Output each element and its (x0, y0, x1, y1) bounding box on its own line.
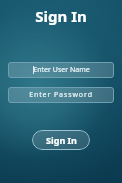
staticText: Enter Password (29, 90, 93, 100)
staticText: Sign In (46, 134, 77, 146)
button[interactable]: Enter Password (8, 87, 114, 103)
staticText: Sign In (35, 6, 87, 26)
button[interactable]: Sign In (32, 130, 90, 150)
staticText: Enter User Name (33, 65, 90, 75)
button[interactable]: Enter User Name (8, 62, 114, 78)
